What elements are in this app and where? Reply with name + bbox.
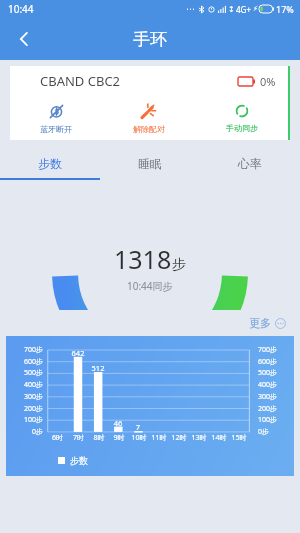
staticText: 手环 [133, 29, 167, 50]
staticText: 700步 [6, 345, 43, 355]
staticText: 步数 [70, 455, 88, 466]
button[interactable]: 蓝牙断开 [10, 96, 102, 140]
staticText: 解除配对 [133, 124, 165, 134]
staticText: 心率 [238, 156, 262, 171]
button[interactable]: 解除配对 [102, 96, 195, 140]
staticText: 17% [276, 3, 294, 15]
staticText: 700步 [258, 345, 294, 355]
button[interactable]: 睡眠 [100, 146, 200, 180]
staticText: 10时 [129, 433, 149, 443]
staticText: 400步 [6, 380, 43, 390]
staticText: 200步 [6, 404, 43, 414]
staticText: 7时 [68, 433, 89, 443]
staticText: 46 [108, 418, 128, 428]
staticText: 15时 [229, 433, 249, 443]
staticText: 8时 [89, 433, 109, 443]
staticText: 100步 [6, 415, 43, 425]
staticText: 11时 [149, 433, 169, 443]
staticText: ⋯ [186, 4, 195, 14]
staticText: 600步 [6, 357, 43, 367]
staticText: 300步 [6, 392, 43, 402]
staticText: 600步 [258, 357, 294, 367]
button[interactable]: 手动同步 [195, 96, 288, 140]
staticText: 6时 [47, 433, 68, 443]
staticText: 512 [88, 363, 108, 373]
staticText: 0% [260, 74, 276, 89]
staticText: 12时 [169, 433, 189, 443]
staticText: 1318 [114, 242, 172, 276]
staticText: 14时 [209, 433, 229, 443]
staticText: 4G+ [236, 4, 251, 15]
staticText: 睡眠 [138, 156, 162, 171]
staticText: 7 [128, 422, 148, 432]
staticText: 步 [172, 256, 186, 274]
button[interactable]: 心率 [200, 146, 300, 180]
staticText: 300步 [258, 392, 294, 402]
staticText: 0步 [258, 427, 294, 437]
button[interactable]: 步数 [0, 146, 100, 180]
staticText: 10:44同步 [127, 279, 173, 293]
staticText: 10:44 [8, 2, 34, 16]
button[interactable]: Back [6, 21, 42, 57]
staticText: ↕ [228, 5, 235, 14]
staticText: 手动同步 [226, 123, 258, 133]
staticText: 蓝牙断开 [40, 124, 72, 134]
button[interactable]: 更多 [249, 316, 286, 330]
staticText: 500步 [6, 368, 43, 378]
staticText: 100步 [258, 415, 294, 425]
staticText: 500步 [258, 368, 294, 378]
staticText: 200步 [258, 404, 294, 414]
staticText: 642 [68, 348, 88, 358]
staticText: 13时 [189, 433, 209, 443]
staticText: 400步 [258, 380, 294, 390]
staticText: 0步 [6, 427, 43, 437]
staticText: 步数 [38, 156, 62, 171]
staticText: CBAND CBC2 [40, 72, 121, 90]
staticText: 更多 [249, 316, 271, 330]
staticText: 9时 [109, 433, 129, 443]
staticText: ⚡ [253, 5, 258, 13]
